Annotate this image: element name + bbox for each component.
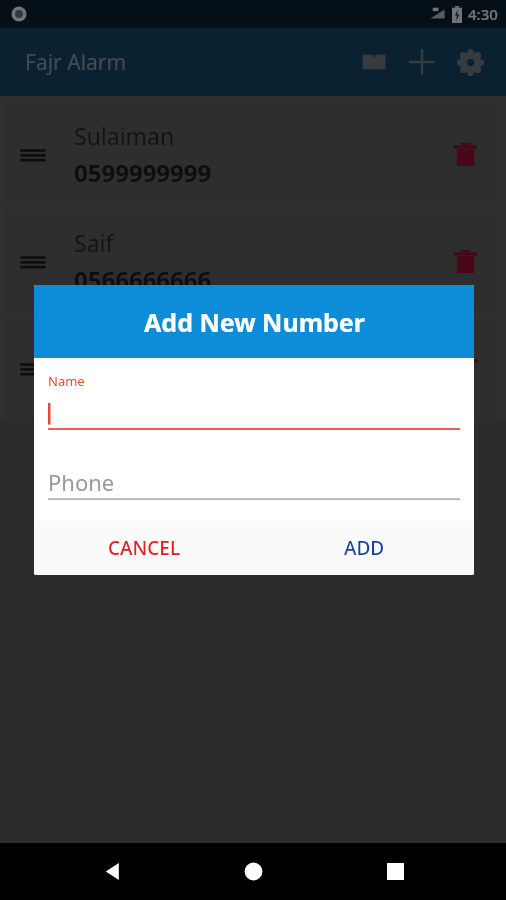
button[interactable]: Delete	[439, 128, 491, 180]
button[interactable]: Ahmed	[6, 318, 500, 418]
button[interactable]: Add	[398, 38, 446, 86]
staticText: 0577777777	[74, 370, 212, 403]
staticText: CANCEL	[108, 535, 181, 561]
button[interactable]: Home	[223, 843, 283, 900]
button[interactable]: Phone	[48, 464, 460, 500]
button[interactable]: Recents	[365, 843, 425, 900]
button[interactable]: Sulaiman	[6, 104, 500, 204]
staticText: Sulaiman	[74, 120, 175, 151]
staticText: Phone	[48, 467, 115, 497]
button[interactable]: CANCEL	[34, 521, 254, 575]
staticText: Saif	[74, 227, 114, 258]
staticText: Add New Number	[144, 305, 365, 339]
button[interactable]: Back	[82, 843, 142, 900]
staticText: 0566666666	[74, 263, 212, 296]
button[interactable]: Delete	[439, 342, 491, 394]
staticText: Ahmed	[74, 334, 152, 365]
staticText: 0599999999	[74, 156, 212, 189]
button[interactable]: Settings	[446, 38, 494, 86]
staticText: Name	[48, 372, 85, 390]
staticText: ADD	[344, 535, 385, 561]
button[interactable]: ADD	[254, 521, 474, 575]
button[interactable]: Delete	[439, 235, 491, 287]
button[interactable]: Guide	[350, 38, 398, 86]
button[interactable]	[48, 400, 460, 430]
button[interactable]: Saif	[6, 211, 500, 311]
staticText: 4:30	[468, 4, 498, 24]
staticText: Fajr Alarm	[25, 48, 127, 77]
